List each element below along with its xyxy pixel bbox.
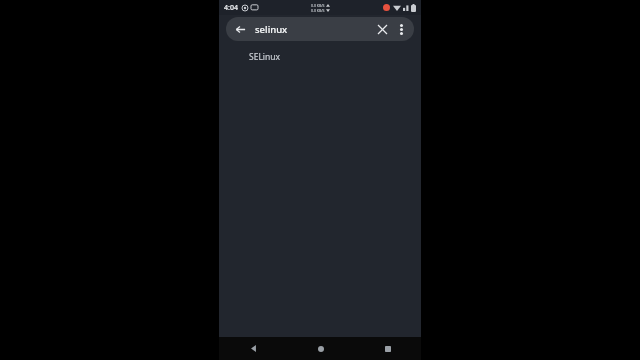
button[interactable]: SELinux (219, 47, 421, 67)
staticText: SELinux (249, 51, 281, 63)
button[interactable]: Home (287, 337, 354, 360)
button[interactable]: Back (219, 337, 287, 360)
button[interactable]: Back (226, 17, 414, 41)
staticText: 4:04 (224, 3, 238, 13)
staticText: 0.0 KB/S (311, 8, 325, 13)
button[interactable]: Clear search (372, 19, 392, 39)
button[interactable]: More options (392, 20, 410, 38)
staticText: selinux (255, 23, 372, 36)
button[interactable]: Recent apps (354, 337, 421, 360)
button[interactable]: Back (230, 19, 250, 39)
staticText: 0.0 KB/S (311, 3, 325, 8)
